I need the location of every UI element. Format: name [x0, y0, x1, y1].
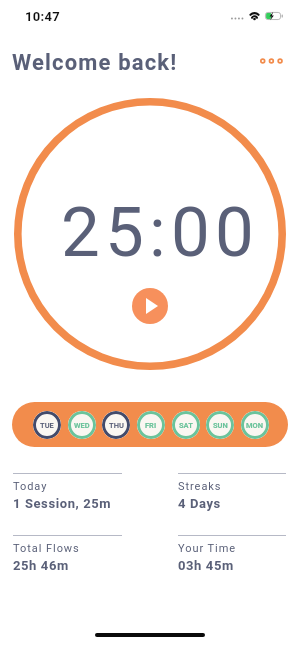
button[interactable]: Today	[13, 473, 122, 511]
button[interactable]: SAT	[172, 411, 200, 439]
button[interactable]: FRI	[137, 411, 165, 439]
button[interactable]: MON	[241, 411, 269, 439]
staticText: WED	[74, 421, 90, 430]
staticText: THU	[109, 421, 124, 430]
staticText: Today	[13, 480, 48, 493]
staticText: Welcome back!	[12, 50, 178, 76]
button[interactable]: TUE	[33, 411, 61, 439]
staticText: SUN	[213, 421, 228, 430]
button[interactable]: Your Time	[178, 535, 286, 573]
button[interactable]: More options	[256, 48, 290, 74]
staticText: 10:47	[25, 9, 61, 24]
button[interactable]: SUN	[206, 411, 234, 439]
staticText: 25:00	[61, 192, 259, 273]
staticText: 03h 45m	[178, 558, 234, 573]
staticText: Streaks	[178, 480, 222, 493]
button[interactable]: Total Flows	[13, 535, 122, 573]
staticText: Total Flows	[13, 542, 80, 555]
button[interactable]: THU	[102, 411, 130, 439]
staticText: 4 Days	[178, 496, 221, 511]
staticText: 1 Session, 25m	[13, 496, 112, 511]
button[interactable]: Start timer	[132, 288, 168, 324]
button[interactable]: Streaks	[178, 473, 286, 511]
staticText: SAT	[179, 421, 193, 430]
staticText: FRI	[145, 421, 157, 430]
staticText: MON	[246, 421, 264, 430]
staticText: TUE	[40, 421, 54, 430]
button[interactable]: WED	[68, 411, 96, 439]
staticText: 25h 46m	[13, 558, 69, 573]
staticText: Your Time	[178, 542, 237, 555]
